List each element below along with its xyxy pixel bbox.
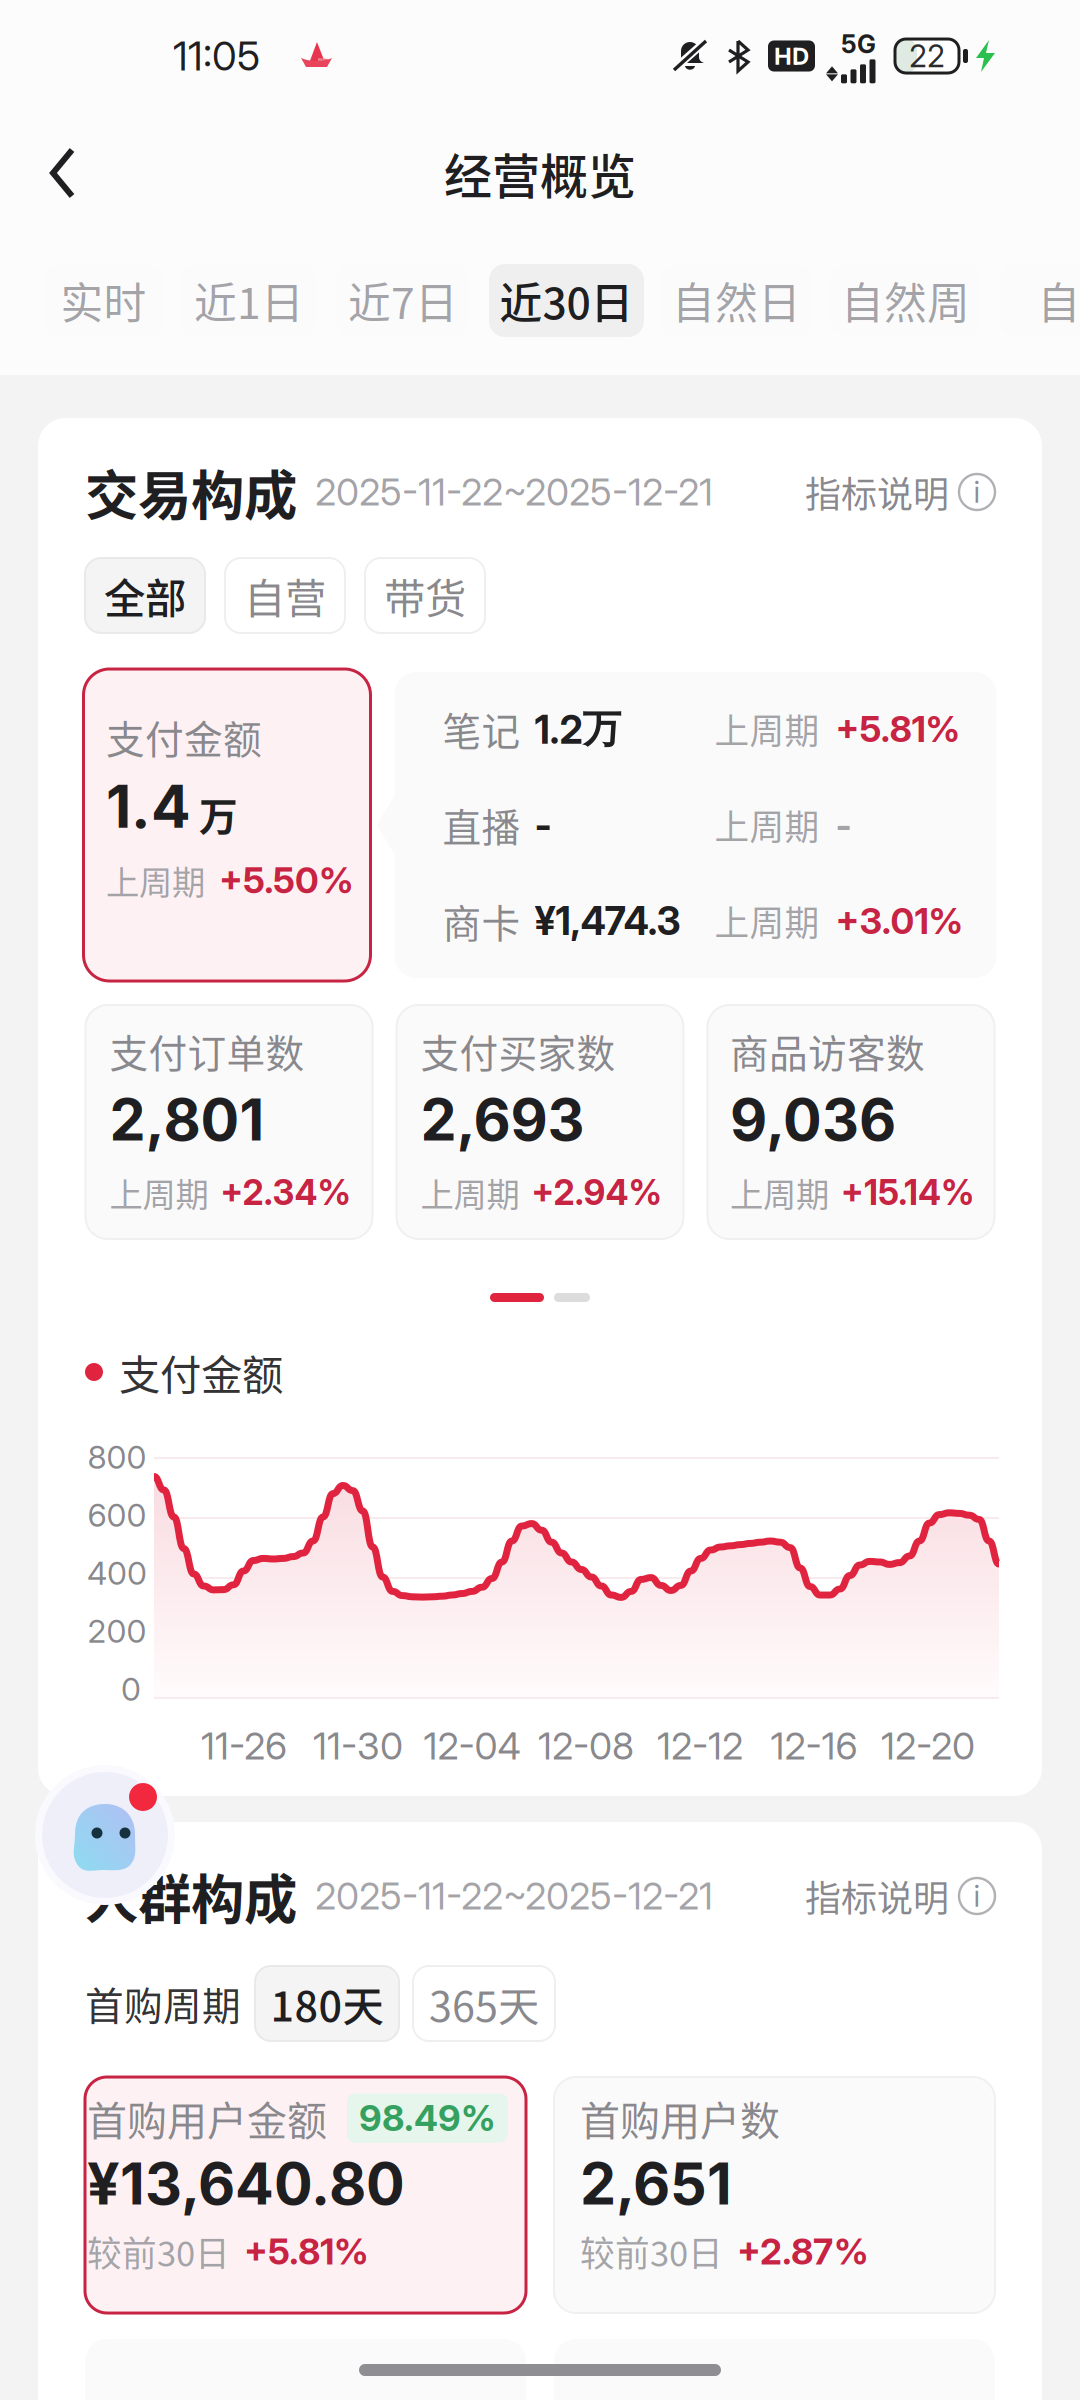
staticText: 支付金额 xyxy=(119,1342,283,1402)
staticText: 11-30 xyxy=(313,1723,403,1769)
staticText: 22 xyxy=(909,37,945,74)
staticText: 9,036 xyxy=(730,1085,896,1154)
button[interactable]: Back xyxy=(0,126,106,220)
staticText: 12-20 xyxy=(881,1723,975,1769)
button[interactable]: 支付买家数 xyxy=(396,1005,683,1239)
staticText: 上周期 xyxy=(420,1168,519,1217)
staticText: +5.81% xyxy=(835,707,960,751)
staticText: HD xyxy=(774,41,809,70)
button[interactable]: 180天 xyxy=(255,1966,399,2041)
staticText: 上周期 xyxy=(714,704,819,754)
staticText: 98.49% xyxy=(359,2096,496,2140)
staticText: 12-04 xyxy=(423,1723,520,1769)
staticText: 指标说明 xyxy=(805,1870,949,1922)
staticText: 0 xyxy=(121,1670,141,1708)
staticText: 实时 xyxy=(60,270,146,331)
staticText: 万 xyxy=(199,786,238,842)
button[interactable]: 自 xyxy=(999,264,1080,337)
staticText: 交易构成 xyxy=(85,453,297,531)
staticText: 2025-11-22~2025-12-21 xyxy=(315,1873,713,1919)
staticText: - xyxy=(835,803,851,847)
staticText: 2,693 xyxy=(420,1085,584,1154)
staticText: 2,651 xyxy=(580,2149,732,2218)
staticText: 2025-11-22~2025-12-21 xyxy=(315,469,713,515)
staticText: i xyxy=(973,474,980,510)
staticText: 较前30日 xyxy=(580,2226,723,2276)
staticText: 首购用户数 xyxy=(580,2089,780,2147)
staticText: - xyxy=(534,802,551,848)
button[interactable]: 支付订单数 xyxy=(85,1005,372,1239)
staticText: 5G xyxy=(841,29,876,59)
button[interactable]: 带货 xyxy=(365,558,485,633)
staticText: +5.50% xyxy=(219,858,354,902)
staticText: 经营概览 xyxy=(444,138,636,208)
button[interactable]: 近30日 xyxy=(489,264,644,337)
button[interactable]: 自营 xyxy=(225,558,345,633)
staticText: 400 xyxy=(87,1554,147,1592)
staticText: +2.87% xyxy=(737,2230,869,2273)
button[interactable]: 自然周 xyxy=(830,264,981,337)
staticText: 首购周期 xyxy=(85,1975,241,2031)
button[interactable]: 支付金额 xyxy=(83,669,370,981)
staticText: 800 xyxy=(87,1438,146,1476)
staticText: 600 xyxy=(87,1496,146,1534)
staticText: 180天 xyxy=(270,1974,383,2033)
staticText: 自然周 xyxy=(841,270,970,331)
staticText: 指标说明 xyxy=(805,466,949,518)
button[interactable]: 商品访客数 xyxy=(707,1005,994,1239)
staticText: i xyxy=(973,1878,980,1914)
button[interactable]: Assistant xyxy=(35,1765,175,1905)
staticText: 较前30日 xyxy=(87,2226,230,2276)
staticText: +2.94% xyxy=(531,1171,661,1213)
staticText: 上周期 xyxy=(714,800,819,850)
button[interactable]: 首购用户金额 xyxy=(85,2077,526,2313)
staticText: 支付买家数 xyxy=(420,1023,615,1079)
staticText: 近30日 xyxy=(499,270,633,331)
button[interactable]: 全部 xyxy=(85,558,205,633)
button[interactable]: 实时 xyxy=(44,264,163,337)
staticText: +3.01% xyxy=(835,899,963,943)
staticText: 近7日 xyxy=(348,270,458,331)
staticText: 人群构成 xyxy=(85,1857,297,1935)
staticText: 自然日 xyxy=(672,270,801,331)
staticText: 11:05 xyxy=(173,32,260,80)
staticText: 12-12 xyxy=(657,1723,743,1769)
staticText: 12-16 xyxy=(770,1723,857,1769)
staticText: 带货 xyxy=(384,566,466,625)
staticText: ¥1,474.3 xyxy=(534,898,680,944)
staticText: 365天 xyxy=(429,1974,539,2033)
staticText: +15.14% xyxy=(841,1171,974,1213)
staticText: 近1日 xyxy=(194,270,304,331)
button[interactable]: 近1日 xyxy=(180,264,318,337)
staticText: 上周期 xyxy=(109,1168,208,1217)
button[interactable]: 首购用户数 xyxy=(554,2077,995,2313)
button[interactable]: 365天 xyxy=(413,1966,555,2041)
staticText: 直播 xyxy=(442,797,520,853)
staticText: 支付金额 xyxy=(106,709,262,765)
staticText: 商品访客数 xyxy=(730,1023,925,1079)
button[interactable]: 指标说明 xyxy=(805,466,995,518)
staticText: 11-26 xyxy=(201,1723,287,1769)
staticText: 上周期 xyxy=(106,856,205,904)
staticText: 上周期 xyxy=(730,1168,829,1217)
staticText: 2,801 xyxy=(109,1085,264,1154)
staticText: +5.81% xyxy=(244,2230,369,2273)
staticText: 自 xyxy=(1037,270,1080,331)
staticText: 1.2万 xyxy=(534,705,621,753)
staticText: 商卡 xyxy=(442,893,520,949)
staticText: 全部 xyxy=(104,566,186,625)
button[interactable]: 近7日 xyxy=(336,264,470,337)
staticText: 笔记 xyxy=(442,701,520,757)
staticText: ¥13,640.80 xyxy=(87,2149,405,2218)
button[interactable]: 自然日 xyxy=(661,264,812,337)
staticText: 200 xyxy=(87,1612,146,1650)
staticText: 1.4 xyxy=(106,771,191,842)
button[interactable]: 指标说明 xyxy=(805,1870,995,1922)
staticText: 支付订单数 xyxy=(109,1023,304,1079)
staticText: 首购用户金额 xyxy=(87,2089,327,2147)
staticText: +2.34% xyxy=(220,1171,350,1213)
staticText: 上周期 xyxy=(714,896,819,946)
staticText: 自营 xyxy=(244,566,326,625)
staticText: 12-08 xyxy=(538,1723,634,1769)
